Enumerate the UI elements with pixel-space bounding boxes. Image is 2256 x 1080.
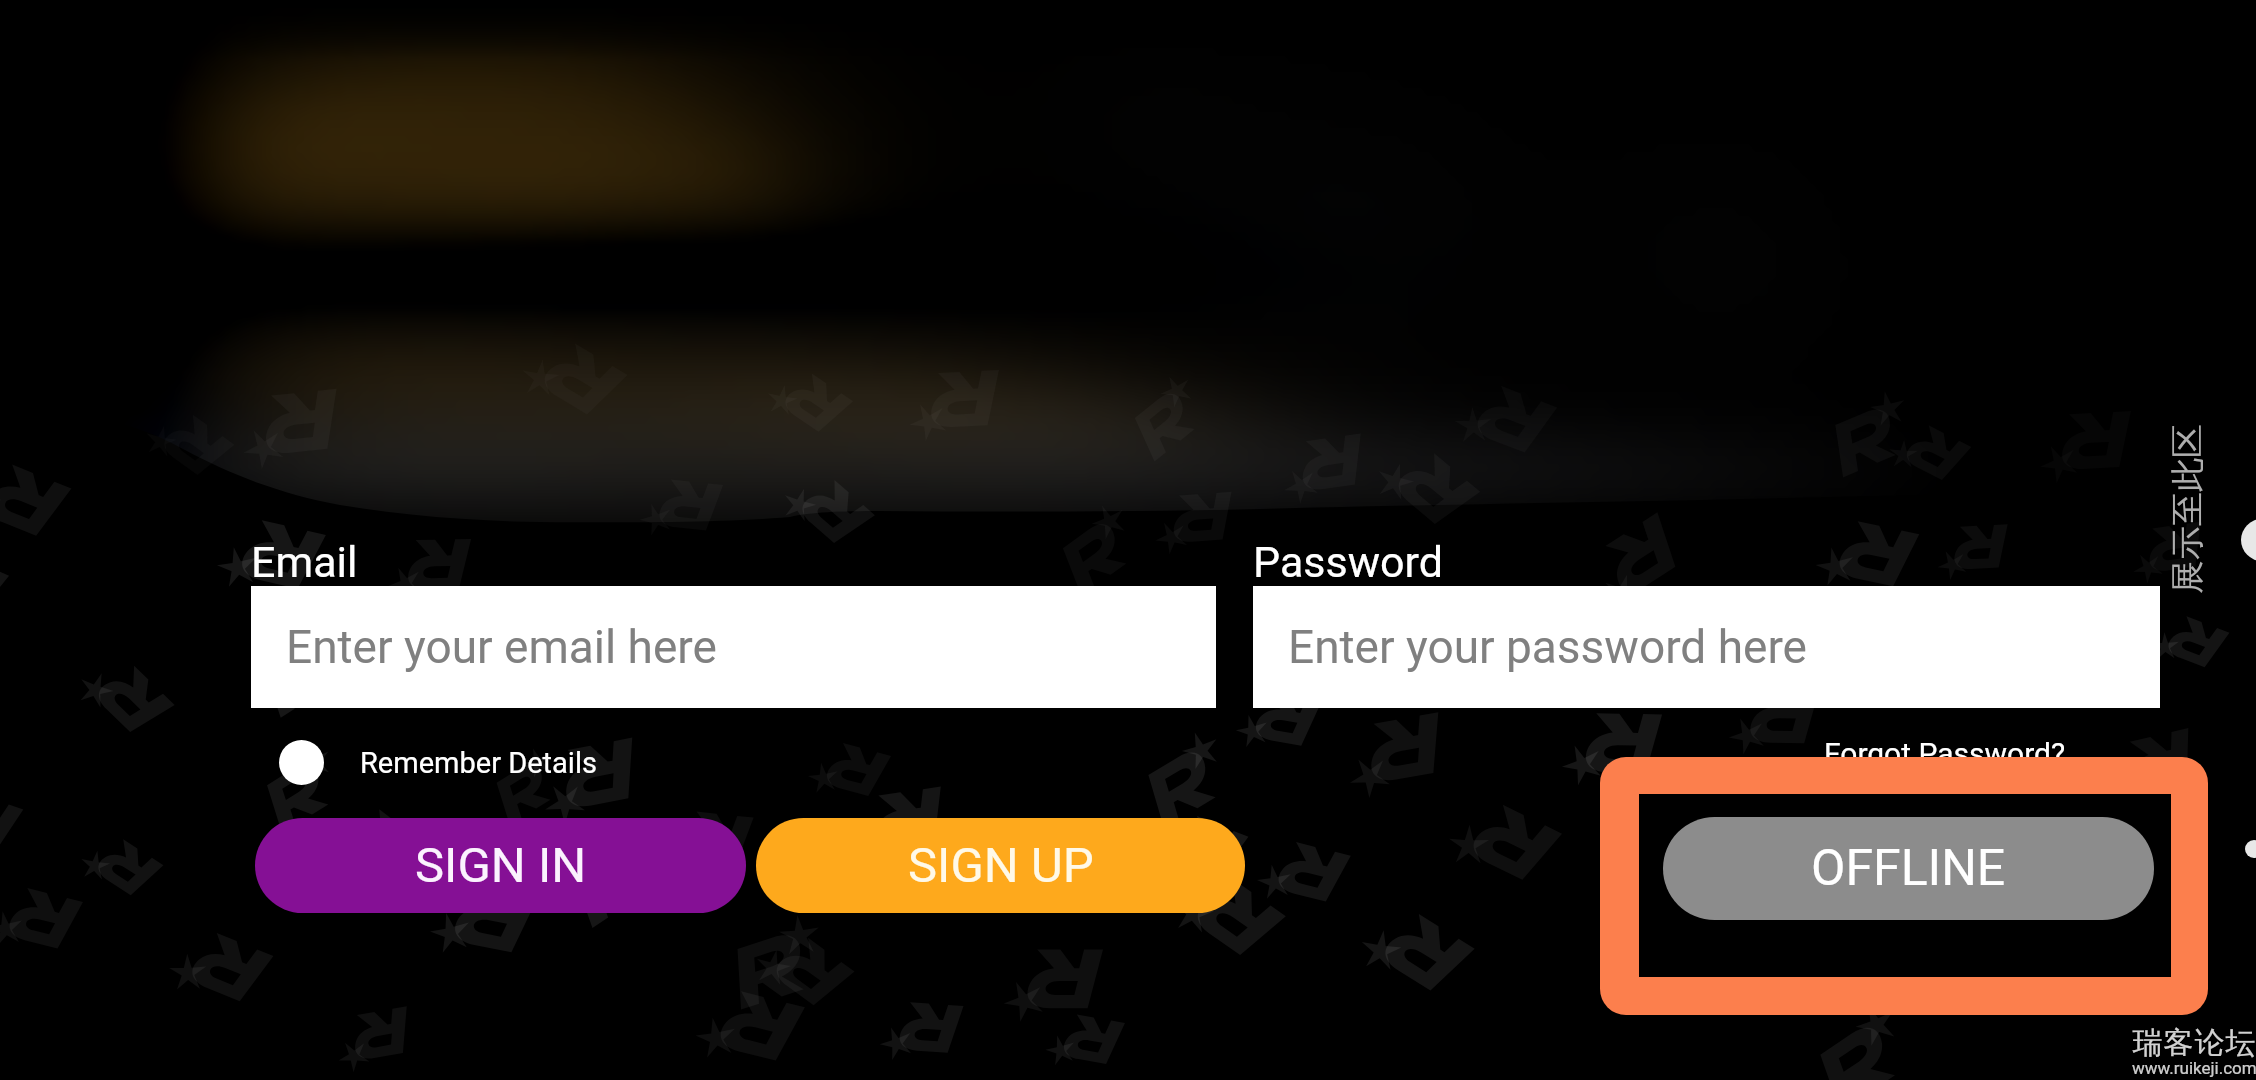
button[interactable]: Forgot Password?: [1824, 736, 2066, 771]
staticText: Remember Details: [360, 746, 597, 780]
button[interactable]: Enter your email here: [251, 586, 1216, 708]
button[interactable]: Remember details checkbox: [279, 740, 597, 785]
button[interactable]: Enter your password here: [1253, 586, 2160, 708]
staticText: Password: [1253, 537, 1443, 587]
staticText: www.ruikeji.com: [2132, 1058, 2256, 1078]
staticText: Email: [251, 537, 358, 587]
staticText: Enter your email here: [286, 620, 717, 674]
staticText: OFFLINE: [1811, 839, 2006, 898]
button[interactable]: SIGN UP: [756, 818, 1245, 913]
staticText: SIGN IN: [415, 837, 587, 894]
staticText: SIGN UP: [908, 837, 1094, 894]
button[interactable]: SIGN IN: [255, 818, 746, 913]
staticText: 展示至此区: [2166, 424, 2209, 594]
staticText: Forgot Password?: [1824, 736, 2066, 771]
staticText: 瑞客论坛: [2132, 1024, 2256, 1062]
staticText: Enter your password here: [1288, 620, 1807, 674]
other: Remember details checkbox: [279, 740, 324, 785]
button[interactable]: OFFLINE: [1663, 817, 2154, 920]
